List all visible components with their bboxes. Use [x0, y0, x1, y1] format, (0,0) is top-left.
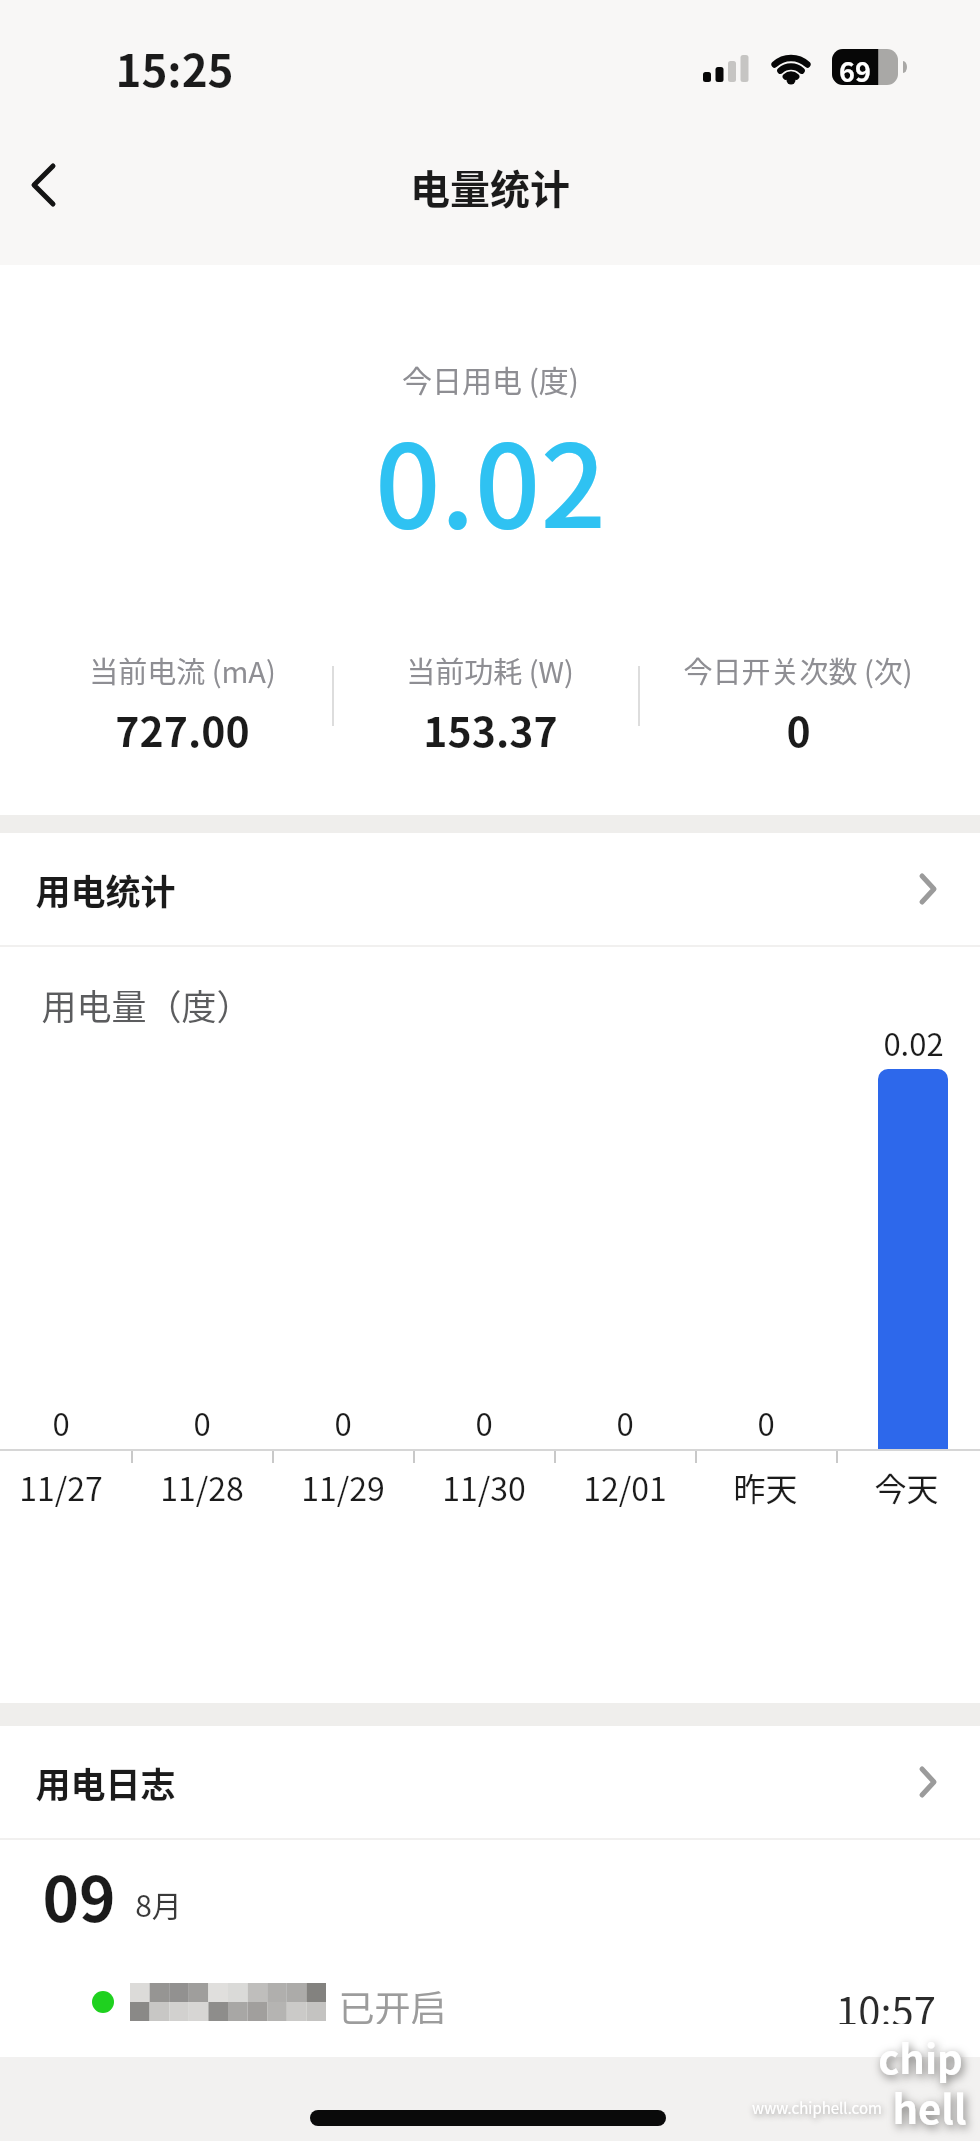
- button[interactable]: 已开启: [0, 1980, 980, 2024]
- button[interactable]: 当前功耗 (W): [336, 649, 644, 758]
- staticText: 11/30: [442, 1464, 526, 1510]
- staticText: hell: [892, 2078, 967, 2136]
- staticText: 昨天: [733, 1464, 798, 1510]
- staticText: 0: [475, 1400, 493, 1445]
- staticText: 0.02: [883, 1020, 944, 1065]
- button[interactable]: 用电日志: [0, 1726, 980, 1838]
- staticText: 69: [839, 51, 871, 90]
- button[interactable]: 用电统计: [0, 833, 980, 945]
- staticText: 727.00: [115, 699, 250, 758]
- staticText: 09: [42, 1850, 116, 1940]
- staticText: 12/01: [583, 1464, 667, 1510]
- staticText: chip: [878, 2028, 963, 2086]
- staticText: 153.37: [423, 699, 558, 758]
- staticText: 0: [334, 1400, 352, 1445]
- staticText: 15:25: [115, 36, 234, 100]
- staticText: 今日开关次数 (次): [683, 649, 913, 691]
- staticText: 用电量（度）: [41, 979, 252, 1030]
- staticText: 用电统计: [35, 864, 176, 915]
- staticText: 11/27: [19, 1464, 103, 1510]
- staticText: 0: [757, 1400, 775, 1445]
- staticText: 11/29: [301, 1464, 385, 1510]
- staticText: 电量统计: [410, 158, 570, 216]
- staticText: 0.02: [375, 395, 606, 562]
- staticText: 已开启: [338, 1980, 447, 2024]
- staticText: www.chiphell.com: [752, 2097, 882, 2119]
- button[interactable]: [30, 163, 58, 207]
- button[interactable]: 当前电流 (mA): [28, 649, 336, 758]
- staticText: 8月: [135, 1882, 182, 1925]
- staticText: 0: [52, 1400, 70, 1445]
- staticText: 10:57: [836, 1980, 936, 2024]
- staticText: 当前功耗 (W): [406, 649, 574, 691]
- staticText: 11/28: [160, 1464, 244, 1510]
- staticText: 当前电流 (mA): [89, 649, 276, 691]
- staticText: 0: [193, 1400, 211, 1445]
- staticText: 0: [616, 1400, 634, 1445]
- staticText: 今日用电 (度): [402, 357, 579, 400]
- button[interactable]: 今日开关次数 (次): [644, 649, 952, 758]
- staticText: 今天: [874, 1464, 939, 1510]
- staticText: 用电日志: [35, 1757, 176, 1808]
- staticText: 0: [786, 699, 811, 758]
